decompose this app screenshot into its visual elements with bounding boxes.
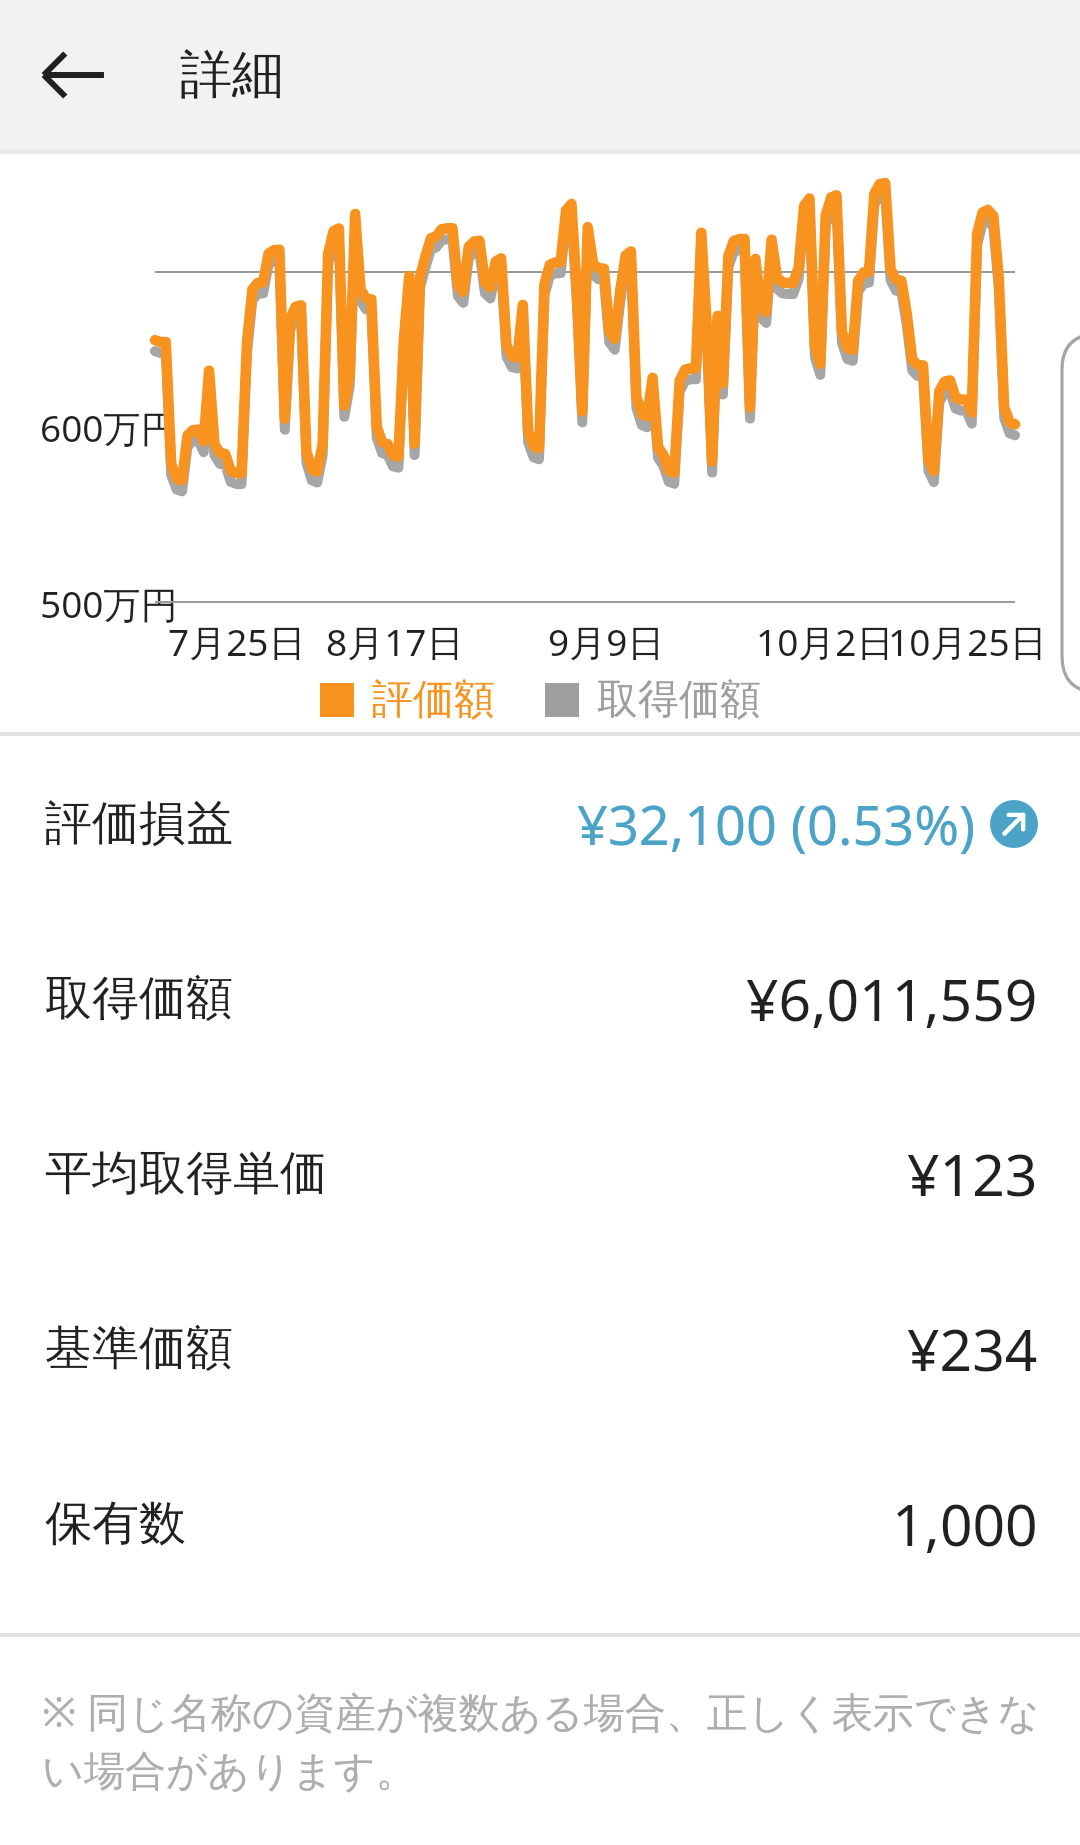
- staticText: 10月2日: [756, 616, 894, 667]
- staticText: 7月25日: [168, 616, 306, 667]
- staticText: ※ 同じ名称の資産が複数ある場合、正しく表示できない場合があります。: [42, 1683, 1052, 1797]
- staticText: 600万円: [40, 402, 178, 453]
- button[interactable]: 保有数: [0, 1436, 1080, 1611]
- staticText: 9月9日: [548, 616, 665, 667]
- staticText: ¥234: [907, 1310, 1038, 1388]
- button[interactable]: 平均取得単価: [0, 1086, 1080, 1261]
- staticText: ¥32,100 (0.53%): [577, 787, 976, 861]
- button[interactable]: 取得価額: [0, 911, 1080, 1086]
- staticText: 詳細: [180, 42, 284, 108]
- staticText: 10月25日: [888, 616, 1047, 667]
- other: 上昇: [990, 800, 1038, 848]
- staticText: 8月17日: [326, 616, 464, 667]
- button[interactable]: 評価損益: [0, 736, 1080, 911]
- staticText: ¥123: [907, 1135, 1038, 1213]
- staticText: 基準価額: [45, 1319, 233, 1378]
- staticText: ¥6,011,559: [746, 960, 1038, 1038]
- staticText: 取得価額: [597, 674, 761, 726]
- staticText: 保有数: [45, 1494, 186, 1553]
- staticText: 500万円: [40, 578, 178, 629]
- staticText: 1,000: [892, 1485, 1038, 1563]
- staticText: 平均取得単価: [45, 1144, 327, 1203]
- staticText: 評価額: [372, 674, 495, 726]
- button[interactable]: 戻る: [30, 32, 116, 118]
- staticText: 取得価額: [45, 969, 233, 1028]
- button[interactable]: 基準価額: [0, 1261, 1080, 1436]
- staticText: 評価損益: [45, 794, 233, 853]
